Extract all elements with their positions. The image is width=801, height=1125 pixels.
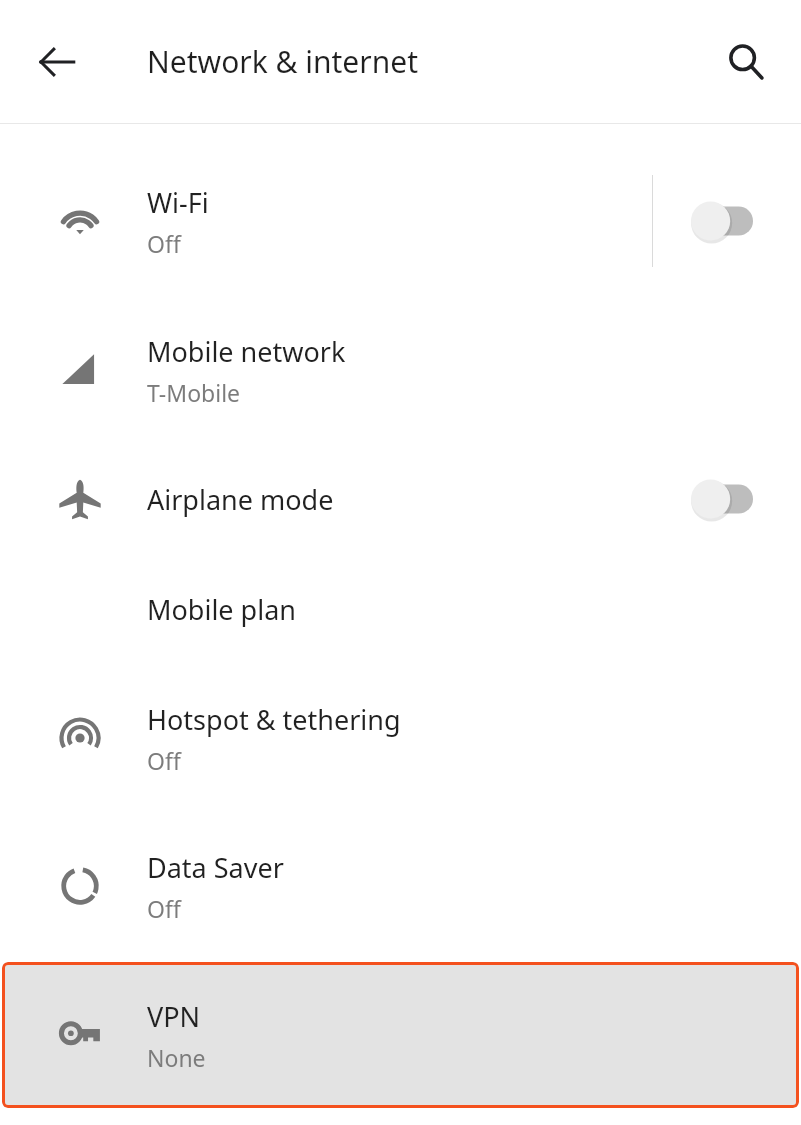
staticText: Mobile plan xyxy=(147,591,297,628)
button[interactable]: Search xyxy=(711,27,781,97)
staticText: Network & internet xyxy=(147,41,418,82)
staticText: Wi-Fi xyxy=(147,184,209,221)
button[interactable]: Mobile network xyxy=(0,296,801,444)
staticText: Hotspot & tethering xyxy=(147,701,401,738)
staticText: Mobile network xyxy=(147,333,346,370)
button[interactable]: Airplane mode xyxy=(0,444,801,554)
staticText: Data Saver xyxy=(147,849,284,886)
staticText: VPN xyxy=(147,998,201,1035)
staticText: Off xyxy=(147,745,181,776)
staticText: None xyxy=(147,1042,206,1073)
button[interactable]: Mobile plan xyxy=(0,554,801,664)
button[interactable]: Airplane mode toggle xyxy=(691,479,753,519)
button[interactable]: Wi-Fi toggle xyxy=(691,201,753,241)
staticText: Airplane mode xyxy=(147,481,334,518)
button[interactable]: VPN xyxy=(2,962,799,1108)
button[interactable]: Hotspot & tethering xyxy=(0,664,801,812)
staticText: Off xyxy=(147,893,181,924)
button[interactable]: Back xyxy=(21,26,93,98)
button[interactable]: Wi-Fi xyxy=(0,146,801,296)
staticText: T-Mobile xyxy=(147,377,241,408)
button[interactable]: Data Saver xyxy=(0,812,801,960)
staticText: Off xyxy=(147,228,181,259)
